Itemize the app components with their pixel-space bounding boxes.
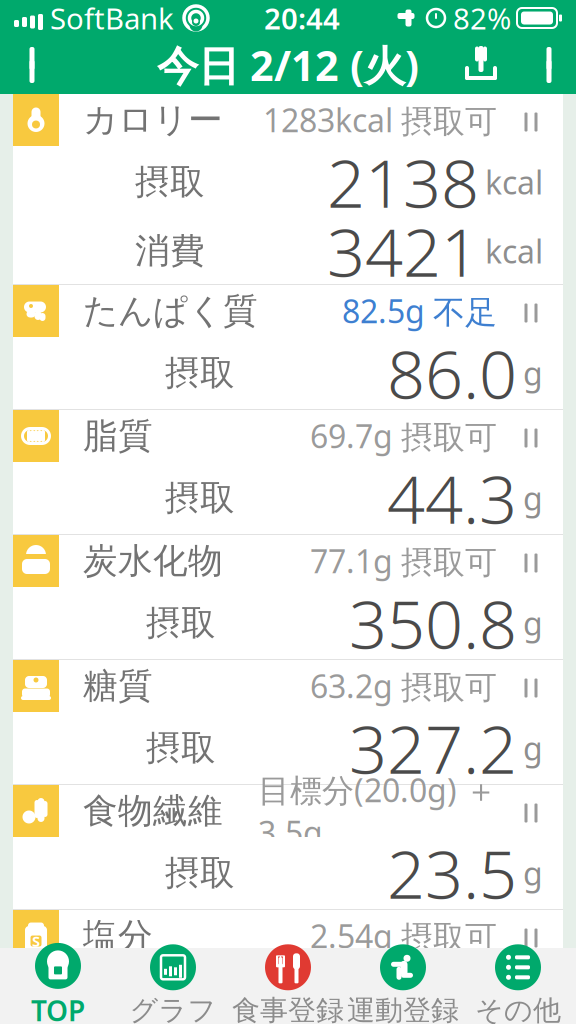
staticText: 23.5 — [387, 829, 517, 917]
button[interactable]: 次の日 — [514, 36, 576, 94]
staticText: 塩分 — [83, 915, 153, 957]
staticText: カロリー — [83, 99, 223, 141]
staticText: 脂質 — [83, 415, 153, 457]
button[interactable]: たんぱく質 — [13, 285, 563, 337]
staticText: 3421 — [327, 207, 479, 295]
staticText: 摂取 — [146, 602, 216, 644]
staticText: 1283kcal 摂取可 — [263, 99, 497, 141]
staticText: kcal — [485, 161, 543, 203]
button[interactable]: カロリー — [13, 94, 563, 146]
button[interactable]: 糖質 — [13, 660, 563, 712]
staticText: 44.3 — [387, 454, 517, 542]
staticText: S — [32, 931, 40, 951]
staticText: 摂取 — [165, 477, 235, 519]
button[interactable]: 脂質 — [13, 410, 563, 462]
staticText: 食物繊維 — [83, 790, 223, 832]
staticText: 摂取 — [165, 352, 235, 394]
staticText: 摂取 — [146, 727, 216, 769]
button[interactable]: 前の日 — [0, 36, 72, 94]
button[interactable]: 共有 — [448, 36, 514, 94]
staticText: 摂取 — [135, 161, 205, 203]
staticText: 今日 2/12 (火) — [157, 38, 419, 92]
staticText: 20:44 — [264, 0, 340, 37]
button[interactable]: 食事登録 — [230, 948, 345, 1024]
staticText: g — [523, 852, 543, 894]
staticText: 糖質 — [83, 665, 153, 707]
staticText: 82% — [453, 0, 511, 37]
button[interactable]: 炭水化物 — [13, 535, 563, 587]
staticText: g — [523, 602, 543, 644]
staticText: g — [523, 727, 543, 769]
staticText: グラフ — [129, 993, 216, 1024]
staticText: その他 — [475, 993, 561, 1024]
staticText: たんぱく質 — [83, 290, 258, 332]
button[interactable]: S — [13, 910, 563, 962]
button[interactable]: 運動登録 — [345, 948, 460, 1024]
staticText: 327.2 — [349, 704, 517, 792]
staticText: 2.54g 摂取可 — [310, 915, 497, 957]
staticText: 77.1g 摂取可 — [310, 540, 497, 582]
staticText: 炭水化物 — [83, 540, 223, 582]
staticText: 消費 — [135, 230, 205, 272]
button[interactable]: 食物繊維 — [13, 785, 563, 837]
staticText: 63.2g 摂取可 — [310, 665, 497, 707]
staticText: 69.7g 摂取可 — [310, 415, 497, 457]
staticText: 86.0 — [387, 329, 517, 417]
staticText: g — [523, 352, 543, 394]
staticText: 目標分(20.0g) ＋ 3.5g — [258, 768, 497, 853]
staticText: TOP — [31, 992, 85, 1024]
staticText: kcal — [485, 230, 543, 272]
staticText: 食事登録 — [232, 993, 344, 1024]
staticText: 2138 — [327, 138, 479, 226]
staticText: 82.5g 不足 — [342, 290, 497, 332]
staticText: SoftBank — [50, 0, 174, 37]
staticText: g — [523, 477, 543, 519]
staticText: 350.8 — [349, 579, 517, 667]
staticText: 運動登録 — [347, 993, 459, 1024]
button[interactable]: その他 — [460, 948, 575, 1024]
button[interactable]: グラフ — [115, 948, 230, 1024]
button[interactable]: TOP — [0, 948, 115, 1024]
staticText: 摂取 — [165, 852, 235, 894]
